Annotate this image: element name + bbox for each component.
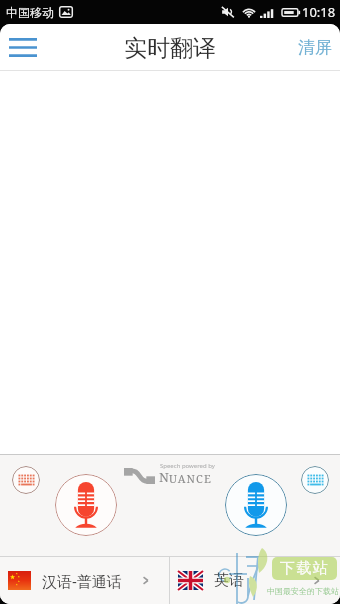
staticText: Speech powered by xyxy=(160,462,215,470)
staticText: N xyxy=(159,468,169,486)
button[interactable]: Chinese keyboard input xyxy=(12,466,40,494)
staticText: 中国最安全的下载站 xyxy=(267,586,339,596)
staticText: 英语 xyxy=(214,571,244,590)
staticText: 清屏 xyxy=(298,37,332,58)
staticText: 10:18 xyxy=(302,3,336,21)
button[interactable]: Record Chinese speech xyxy=(55,474,117,536)
staticText: 汉语-普通话 xyxy=(42,571,122,591)
button[interactable]: Record English speech xyxy=(225,474,287,536)
button[interactable]: 汉语-普通话 xyxy=(0,557,169,604)
staticText: 实时翻译 xyxy=(124,34,216,63)
button[interactable]: 英语 xyxy=(170,557,340,604)
staticText: 中国移动 xyxy=(6,5,54,20)
staticText: 下载站 xyxy=(280,559,330,578)
button[interactable]: 清屏 xyxy=(284,24,340,70)
staticText: UANCE xyxy=(169,471,212,486)
button[interactable]: English keyboard input xyxy=(301,466,329,494)
button[interactable]: Menu xyxy=(0,24,46,70)
